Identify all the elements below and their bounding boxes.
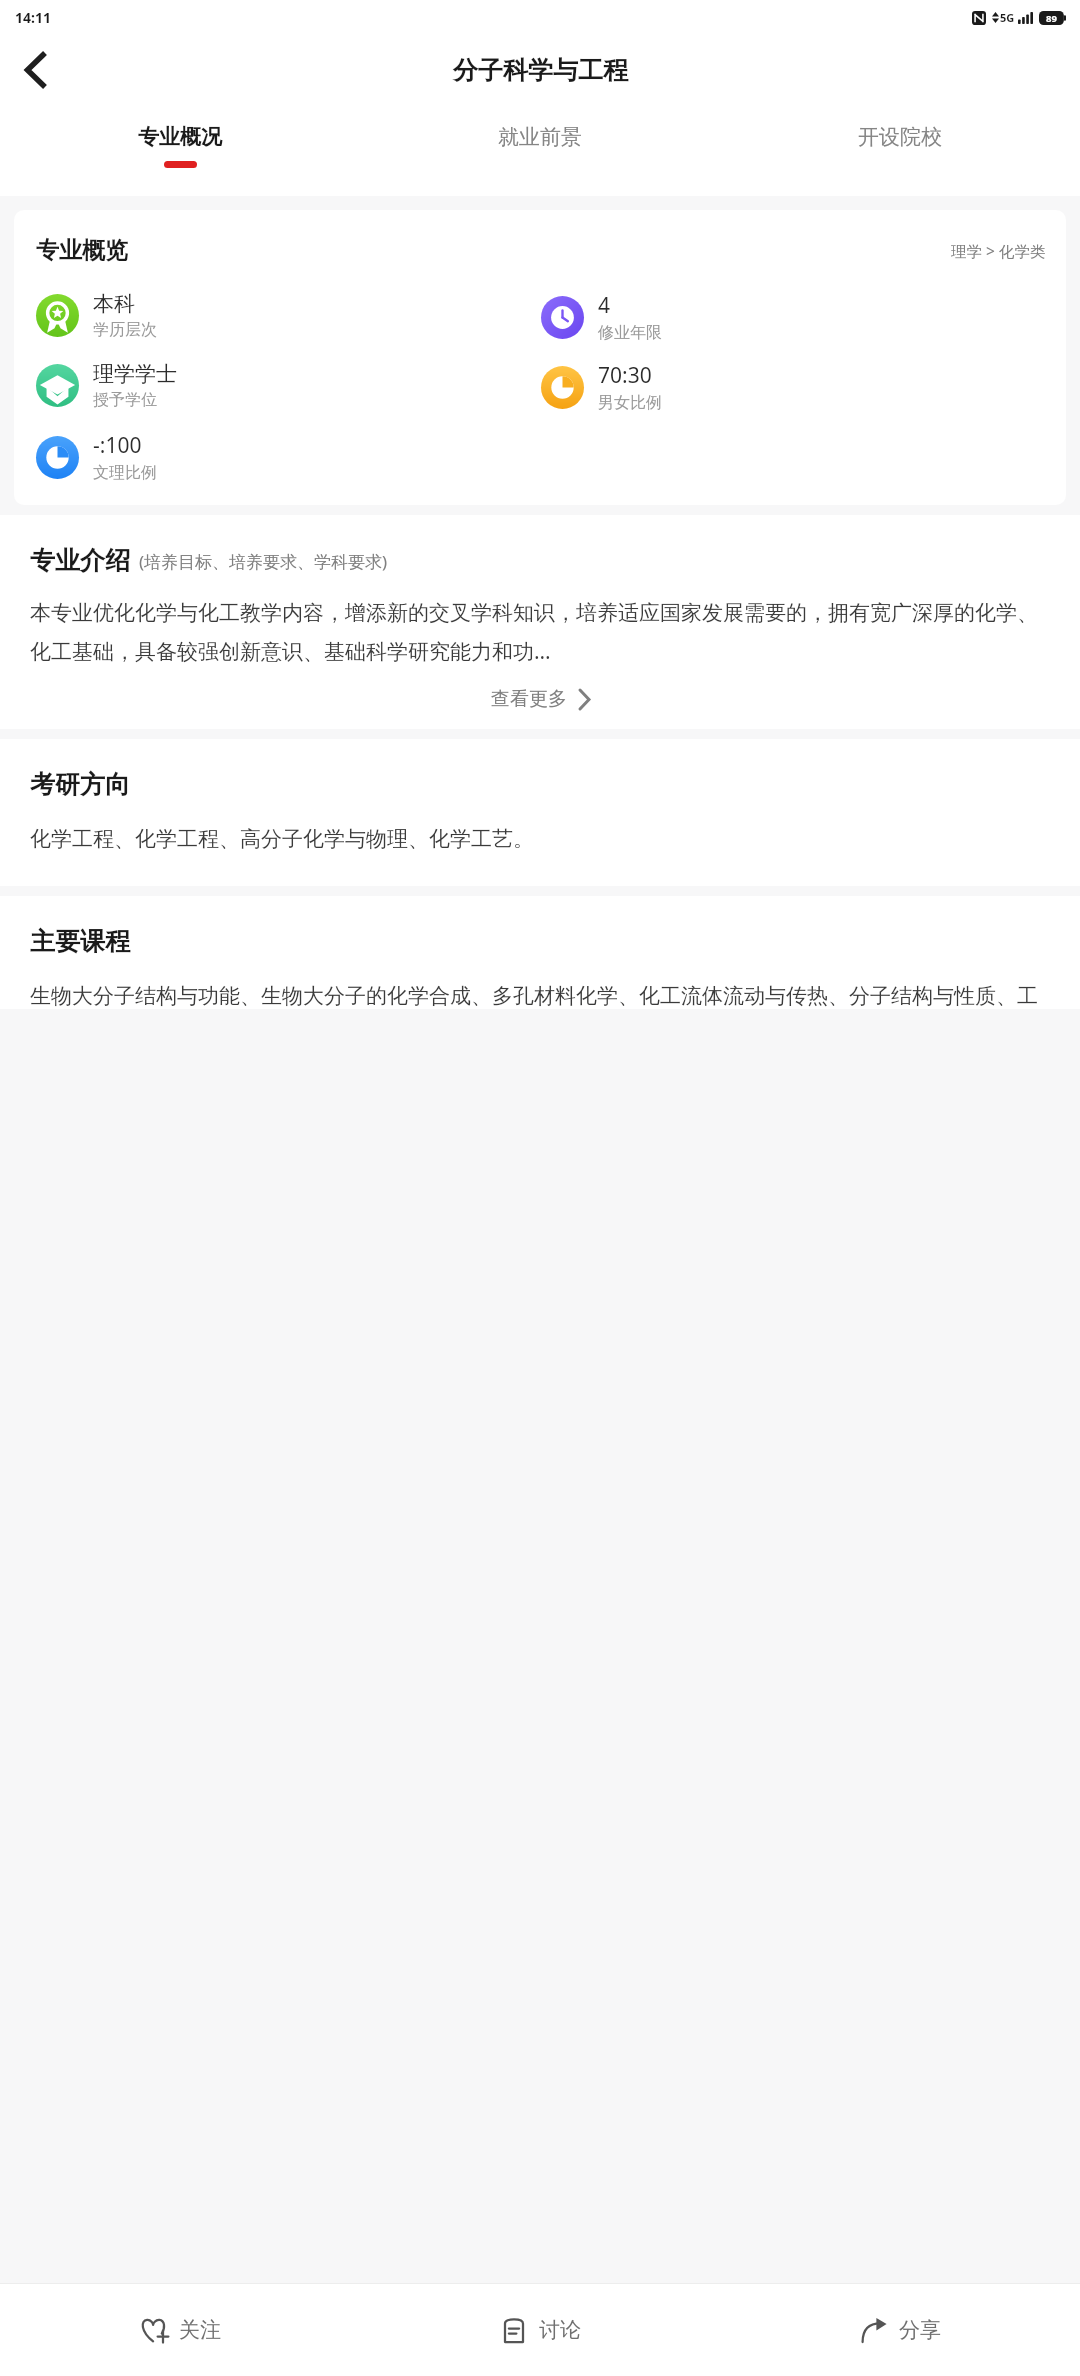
button[interactable]: 专业概况 [0, 106, 360, 196]
staticText: 分子科学与工程 [453, 55, 628, 86]
staticText: -:100 [93, 431, 142, 460]
staticText: 理学学士 [93, 361, 177, 387]
staticText: 关注 [179, 2317, 221, 2343]
button[interactable]: 开设院校 [720, 106, 1080, 196]
staticText: 分享 [899, 2317, 941, 2343]
staticText: 修业年限 [598, 323, 662, 343]
staticText: 本科 [93, 291, 135, 317]
staticText: 授予学位 [93, 390, 157, 410]
staticText: 查看更多 [491, 687, 567, 711]
staticText: 专业概览 [36, 236, 128, 265]
staticText: 专业概况 [138, 124, 222, 150]
staticText: 70:30 [598, 361, 652, 390]
staticText: 本专业优化化学与化工教学内容，增添新的交叉学科知识，培养适应国家发展需要的，拥有… [30, 600, 1050, 665]
staticText: 理学 > 化学类 [951, 240, 1046, 261]
button[interactable]: 分享 [720, 2284, 1080, 2376]
staticText: 考研方向 [30, 769, 130, 800]
staticText: 男女比例 [598, 393, 662, 413]
staticText: 文理比例 [93, 463, 157, 483]
staticText: 讨论 [539, 2317, 581, 2343]
staticText: 学历层次 [93, 320, 157, 340]
button[interactable]: 就业前景 [360, 106, 720, 196]
staticText: 5G [1000, 10, 1015, 25]
staticText: 生物大分子结构与功能、生物大分子的化学合成、多孔材料化学、化工流体流动与传热、分… [30, 983, 1038, 1009]
button[interactable]: 查看更多 [30, 687, 1050, 711]
staticText: (培养目标、培养要求、学科要求) [139, 550, 388, 573]
button[interactable]: 讨论 [360, 2284, 720, 2376]
staticText: 89 [1046, 12, 1057, 25]
staticText: 化学工程、化学工程、高分子化学与物理、化学工艺。 [30, 826, 534, 852]
staticText: 4 [598, 291, 611, 320]
button[interactable]: Back [6, 42, 62, 98]
staticText: 就业前景 [498, 124, 582, 150]
staticText: 专业介绍 [30, 545, 130, 576]
staticText: 开设院校 [858, 124, 942, 150]
staticText: 主要课程 [30, 926, 130, 957]
staticText: 14:11 [15, 8, 51, 27]
button[interactable]: 关注 [0, 2284, 360, 2376]
